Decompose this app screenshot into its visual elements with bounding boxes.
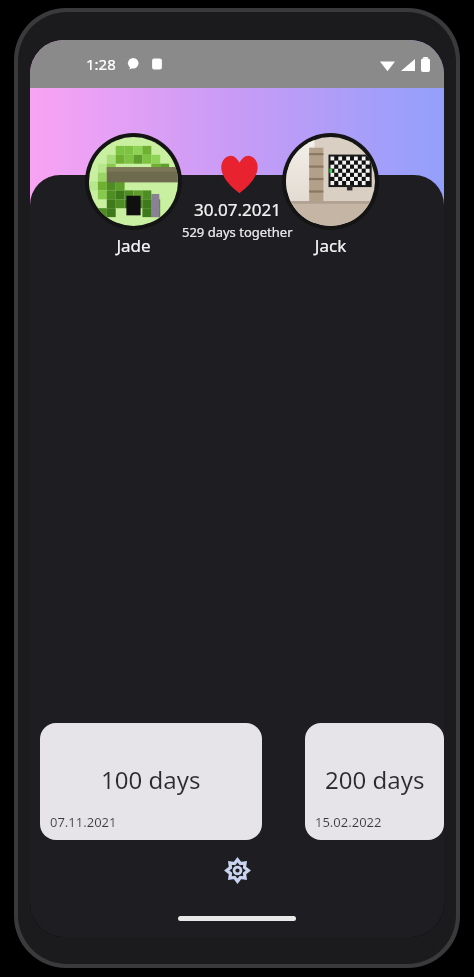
staticText: 1:28 [86,54,116,74]
staticText: 15.02.2022 [315,813,382,831]
staticText: 529 days together [182,223,293,241]
button[interactable]: Settings [215,848,259,892]
button[interactable]: Jade profile [85,133,182,230]
button[interactable]: 200 days [305,723,444,840]
staticText: Jack [282,234,379,257]
staticText: Jade [85,234,182,257]
staticText: 07.11.2021 [50,813,117,831]
staticText: 200 days [325,763,425,796]
button[interactable]: Jack profile [282,133,379,230]
staticText: 30.07.2021 [194,198,281,221]
staticText: 100 days [101,763,201,796]
button[interactable]: 100 days [40,723,262,840]
